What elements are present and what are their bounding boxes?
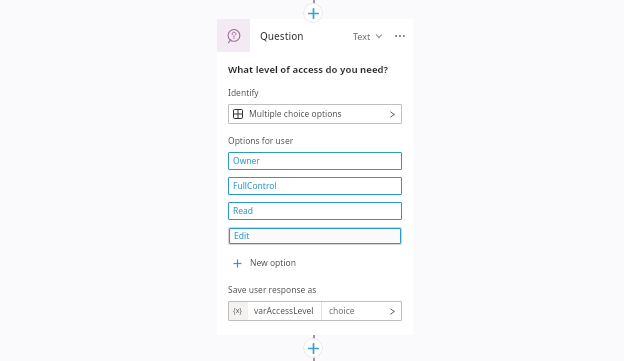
button[interactable]: Read — [228, 202, 402, 220]
staticText: New option — [250, 257, 297, 269]
button[interactable]: Owner — [228, 152, 402, 170]
staticText: FullControl — [233, 180, 277, 192]
button[interactable]: Edit — [229, 228, 401, 244]
staticText: Owner — [233, 155, 260, 167]
button[interactable]: Multiple choice options — [228, 104, 402, 124]
staticText: Multiple choice options — [249, 108, 342, 120]
staticText: Options for user — [228, 135, 294, 147]
staticText: Edit — [234, 230, 250, 242]
staticText: Question — [260, 29, 304, 43]
staticText: varAccessLevel — [254, 305, 314, 317]
button[interactable]: Add step — [303, 338, 323, 358]
button[interactable]: More options — [391, 27, 409, 45]
button[interactable]: {x} — [228, 301, 402, 321]
button[interactable]: FullControl — [228, 177, 402, 195]
staticText: Read — [233, 205, 254, 217]
staticText: Save user response as — [228, 284, 317, 296]
staticText: Identify — [228, 87, 259, 99]
staticText: Text — [353, 30, 371, 42]
staticText: choice — [329, 305, 355, 317]
button[interactable]: Add step — [303, 3, 323, 23]
button[interactable]: New option — [228, 254, 297, 272]
staticText: What level of access do you need? — [228, 63, 389, 76]
button[interactable]: Text — [351, 26, 385, 46]
staticText: {x} — [233, 306, 243, 316]
